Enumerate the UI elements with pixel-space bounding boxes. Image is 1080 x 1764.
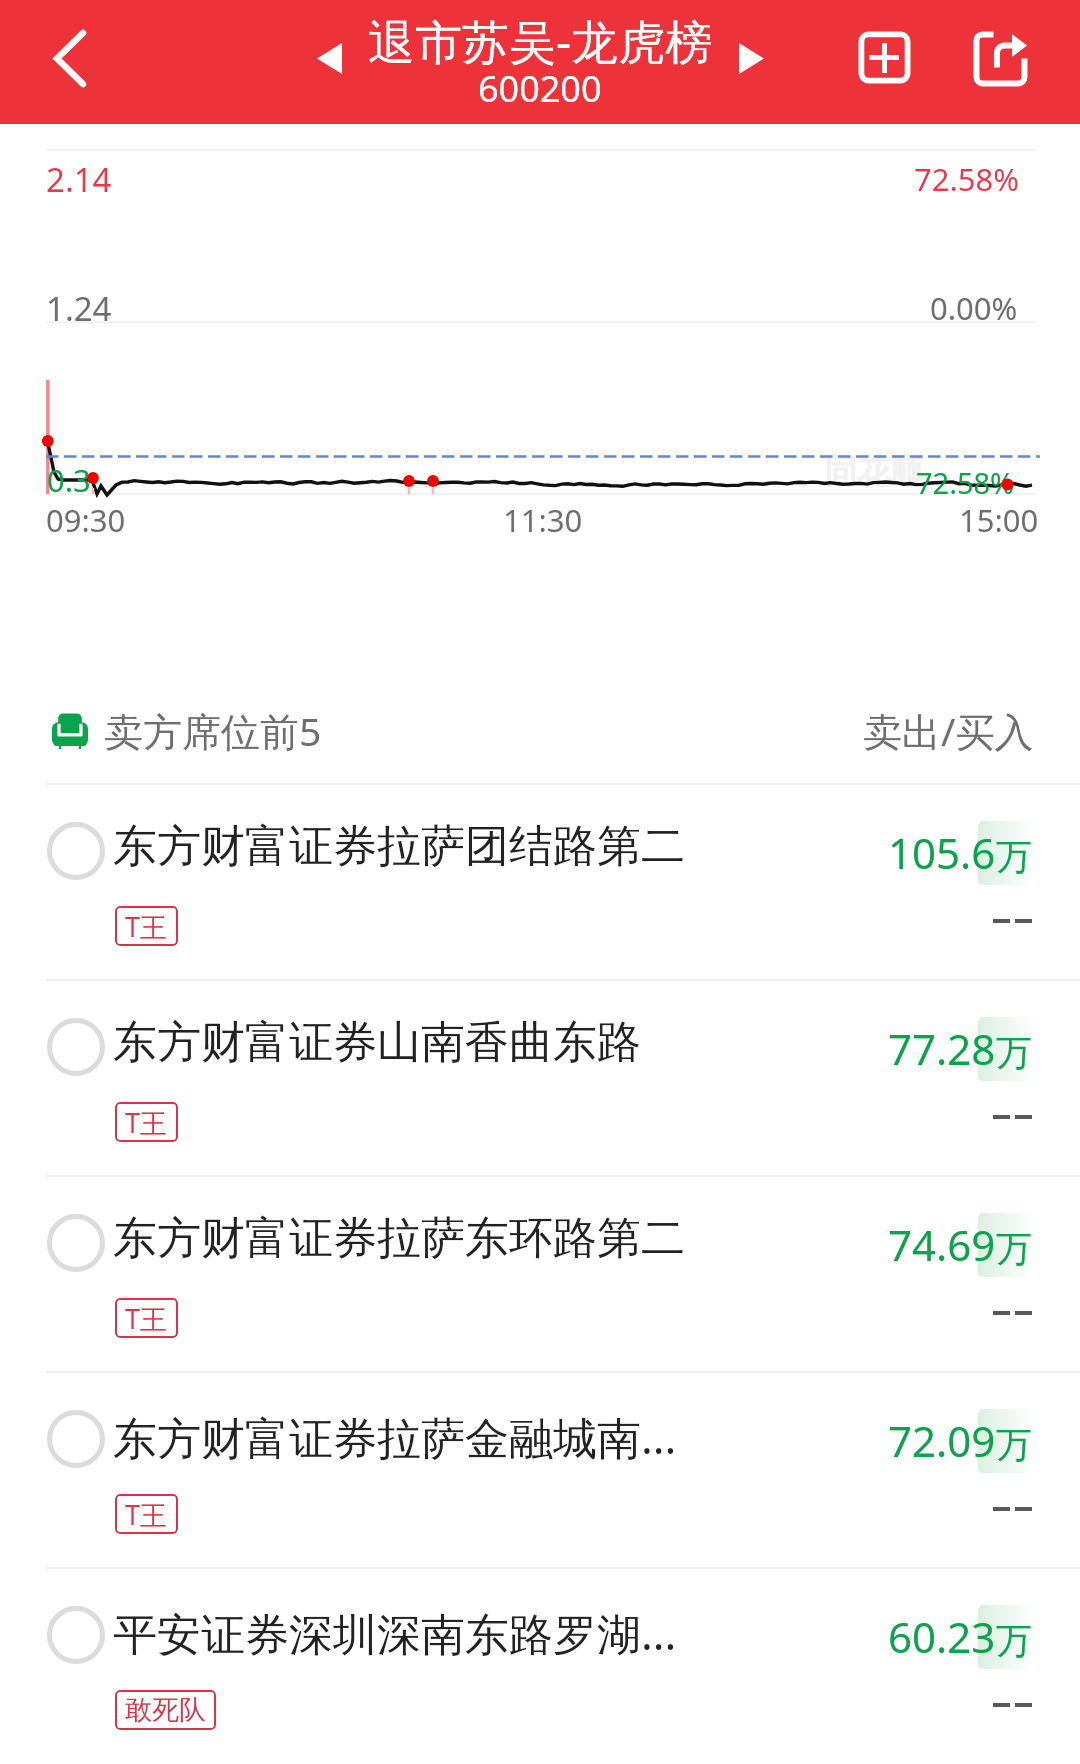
button[interactable]: 东方财富证券山南香曲东路: [0, 981, 1080, 1177]
staticText: T王: [125, 1104, 168, 1141]
staticText: 60.23: [888, 1608, 996, 1665]
staticText: 72.09: [888, 1412, 996, 1469]
staticText: 退市苏吴-龙虎榜: [368, 9, 713, 73]
staticText: 敢死队: [125, 1693, 206, 1727]
staticText: T王: [125, 908, 168, 945]
staticText: 600200: [478, 64, 602, 113]
staticText: 1.24: [46, 286, 112, 331]
staticText: 卖方席位前5: [104, 704, 322, 757]
staticText: 105.6: [888, 824, 996, 881]
staticText: 万: [996, 1030, 1032, 1075]
button[interactable]: Share: [955, 7, 1045, 109]
staticText: 同花顺: [824, 451, 923, 493]
staticText: T王: [125, 1300, 168, 1337]
staticText: 东方财富证券拉萨东环路第二: [113, 1211, 685, 1266]
staticText: 东方财富证券山南香曲东路: [113, 1015, 641, 1070]
button[interactable]: 平安证券深圳深南东路罗湖...: [0, 1569, 1080, 1764]
staticText: 72.58%: [916, 463, 1015, 502]
staticText: 东方财富证券拉萨金融城南...: [113, 1407, 677, 1467]
button[interactable]: Back: [0, 0, 120, 124]
staticText: 2.14: [46, 157, 112, 202]
staticText: 平安证券深圳深南东路罗湖...: [113, 1603, 677, 1663]
staticText: 万: [996, 834, 1032, 879]
staticText: 卖出/买入: [863, 704, 1034, 757]
staticText: 11:30: [503, 499, 583, 541]
button[interactable]: 东方财富证券拉萨金融城南...: [0, 1373, 1080, 1569]
staticText: 15:00: [959, 499, 1039, 541]
button[interactable]: 东方财富证券拉萨团结路第二: [0, 785, 1080, 981]
staticText: 72.58%: [914, 158, 1019, 200]
staticText: 74.69: [888, 1216, 996, 1273]
staticText: 0.3: [47, 459, 91, 501]
staticText: 09:30: [46, 499, 126, 541]
staticText: 东方财富证券拉萨团结路第二: [113, 819, 685, 874]
staticText: 0.00%: [930, 287, 1018, 329]
staticText: 万: [996, 1422, 1032, 1467]
staticText: 77.28: [888, 1020, 996, 1077]
staticText: 万: [996, 1226, 1032, 1271]
button[interactable]: 东方财富证券拉萨东环路第二: [0, 1177, 1080, 1373]
staticText: 万: [996, 1618, 1032, 1663]
staticText: T王: [125, 1496, 168, 1533]
button[interactable]: Add: [840, 7, 930, 109]
